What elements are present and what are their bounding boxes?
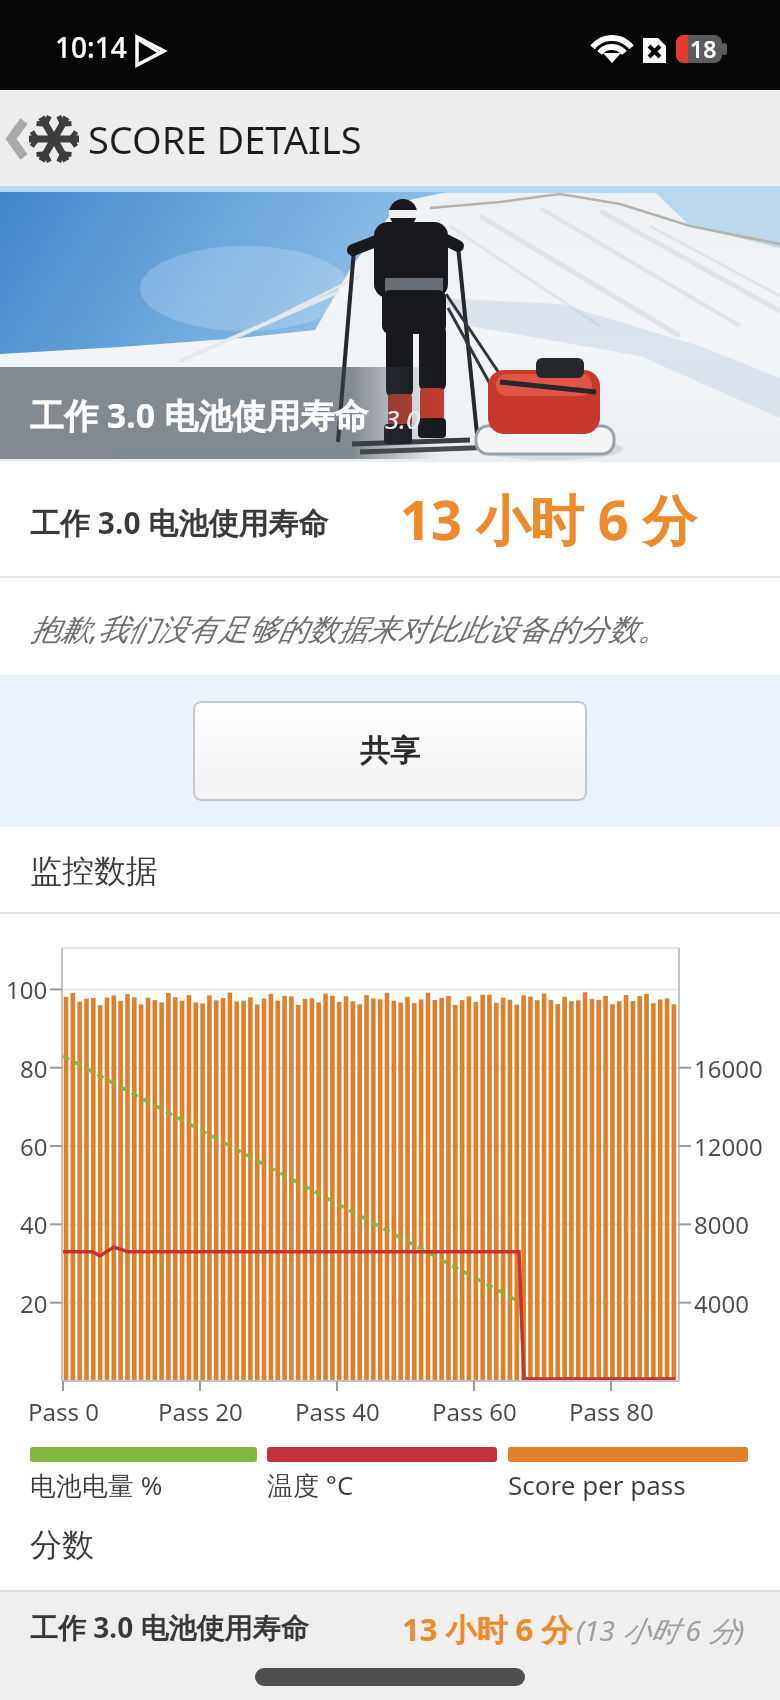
staticText: 抱歉,我们没有足够的数据来对比此设备的分数。 bbox=[30, 608, 668, 649]
staticText: 10:14 bbox=[55, 28, 127, 66]
staticText: 温度 °C bbox=[267, 1467, 354, 1503]
staticText: 工作 3.0 电池使用寿命 bbox=[30, 1608, 309, 1646]
staticText: 8000 bbox=[694, 1208, 749, 1241]
staticText: 60 bbox=[20, 1130, 48, 1163]
staticText: 电池电量 % bbox=[30, 1467, 163, 1503]
staticText: 4000 bbox=[694, 1287, 749, 1320]
staticText: (13 小时 6 分) bbox=[576, 1611, 745, 1649]
button[interactable]: 共享 bbox=[193, 701, 587, 801]
staticText: 共享 bbox=[360, 732, 420, 770]
staticText: 13 小时 6 分 bbox=[400, 482, 697, 556]
staticText: Pass 0 bbox=[28, 1395, 99, 1428]
staticText: 13 小时 6 分 bbox=[402, 1608, 573, 1650]
staticText: 分数 bbox=[30, 1525, 94, 1565]
staticText: Score per pass bbox=[508, 1467, 686, 1502]
staticText: SCORE DETAILS bbox=[88, 113, 362, 165]
staticText: Pass 20 bbox=[158, 1395, 243, 1428]
button[interactable] bbox=[0, 90, 88, 186]
staticText: 工作 3.0 电池使用寿命 bbox=[30, 392, 369, 438]
staticText: 80 bbox=[20, 1052, 48, 1085]
staticText: Pass 60 bbox=[432, 1395, 517, 1428]
staticText: 工作 3.0 电池使用寿命 bbox=[30, 502, 329, 543]
staticText: 100 bbox=[6, 973, 48, 1006]
staticText: 16000 bbox=[694, 1052, 763, 1085]
staticText: 18 bbox=[690, 33, 717, 64]
staticText: 监控数据 bbox=[30, 851, 158, 891]
staticText: Pass 40 bbox=[295, 1395, 380, 1428]
staticText: 20 bbox=[20, 1287, 48, 1320]
staticText: 3.0 bbox=[385, 401, 421, 436]
staticText: 12000 bbox=[694, 1130, 763, 1163]
staticText: Pass 80 bbox=[569, 1395, 654, 1428]
staticText: 40 bbox=[20, 1208, 48, 1241]
